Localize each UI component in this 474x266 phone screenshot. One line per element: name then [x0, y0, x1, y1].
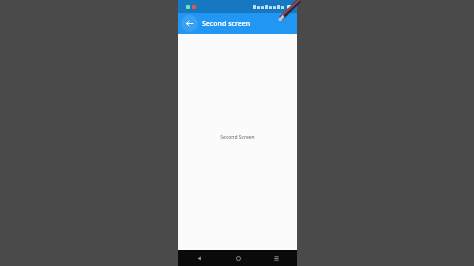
button[interactable]: Recent apps — [269, 251, 283, 265]
staticText: Second screen — [202, 19, 251, 29]
button[interactable]: Back — [192, 251, 206, 265]
button[interactable]: Navigate up — [181, 15, 198, 32]
button[interactable]: Home — [231, 251, 245, 265]
staticText: Second Screen — [220, 134, 255, 141]
